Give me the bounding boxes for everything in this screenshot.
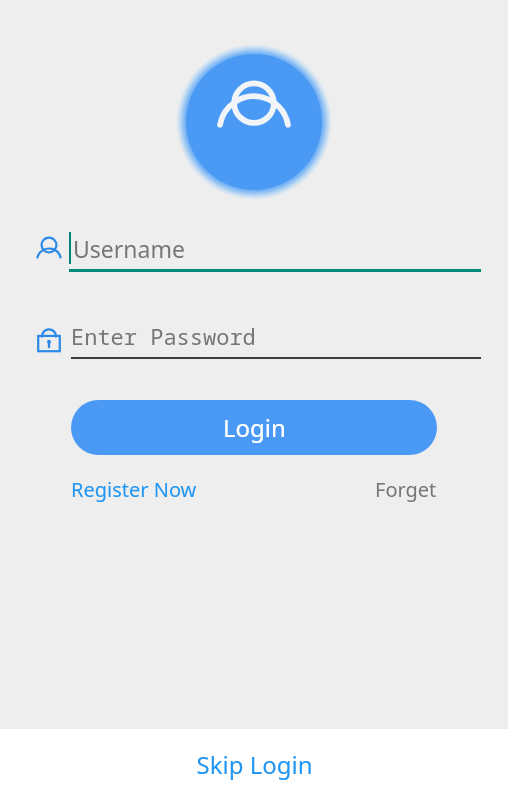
button[interactable]: Username bbox=[36, 232, 481, 272]
staticText: Username bbox=[73, 233, 185, 264]
button[interactable]: Login bbox=[71, 400, 437, 455]
staticText: Register Now bbox=[71, 476, 197, 503]
button[interactable]: Forget bbox=[375, 476, 437, 503]
button[interactable]: Enter Password bbox=[36, 321, 481, 359]
staticText: Login bbox=[223, 411, 286, 444]
staticText: Skip Login bbox=[196, 748, 313, 781]
other: Profile avatar bbox=[176, 44, 332, 200]
staticText: Enter Password bbox=[71, 321, 256, 351]
button[interactable]: Skip Login bbox=[0, 729, 508, 800]
button[interactable]: Register Now bbox=[71, 476, 197, 503]
staticText: Forget bbox=[375, 476, 437, 503]
